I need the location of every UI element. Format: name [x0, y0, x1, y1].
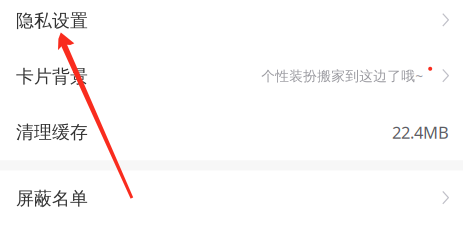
staticText: 清理缓存: [16, 121, 88, 144]
staticText: 隐私设置: [16, 10, 88, 32]
button[interactable]: 清理缓存: [0, 104, 463, 160]
staticText: 卡片背景: [16, 65, 88, 88]
staticText: 22.4MB: [392, 121, 449, 144]
staticText: 个性装扮搬家到这边了哦~: [261, 66, 423, 85]
staticText: 屏蔽名单: [16, 187, 88, 210]
button[interactable]: 隐私设置: [0, 0, 463, 49]
button[interactable]: 屏蔽名单: [0, 171, 463, 227]
button[interactable]: 卡片背景: [0, 49, 463, 105]
